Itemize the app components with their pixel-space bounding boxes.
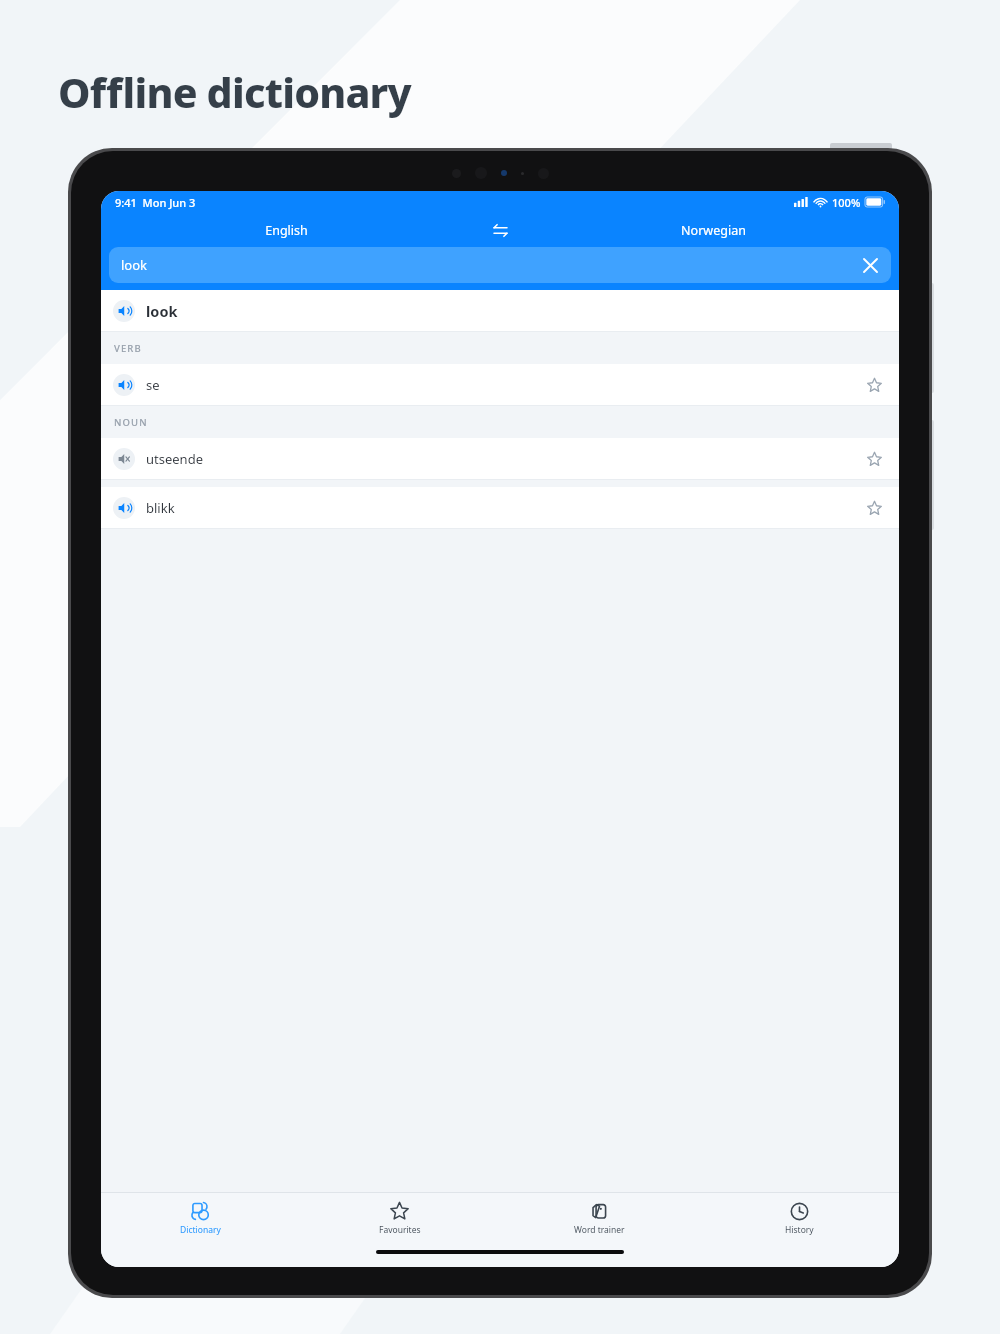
staticText: History <box>785 1224 814 1236</box>
button[interactable]: Pronounce look <box>101 290 899 331</box>
button[interactable]: Favourites <box>300 1193 499 1245</box>
staticText: Offline dictionary <box>58 64 411 120</box>
staticText: se <box>146 376 160 394</box>
button[interactable]: Dictionary <box>101 1193 300 1245</box>
button[interactable]: Norwegian <box>528 213 899 247</box>
button[interactable]: Pronounce se <box>101 364 899 405</box>
staticText: look <box>121 256 148 274</box>
staticText: 100% <box>832 195 861 210</box>
staticText: utseende <box>146 450 203 468</box>
button[interactable]: look <box>109 247 891 283</box>
button[interactable]: Pronounce utseende <box>113 448 135 470</box>
button[interactable]: Add blikk to favourites <box>861 495 887 521</box>
button[interactable]: Pronounce look <box>113 300 135 322</box>
button[interactable]: History <box>699 1193 899 1245</box>
staticText: NOUN <box>114 416 148 429</box>
button[interactable]: Clear search <box>857 252 883 278</box>
button[interactable]: English <box>101 213 472 247</box>
button[interactable]: Pronounce blikk <box>113 497 135 519</box>
button[interactable]: Add se to favourites <box>861 372 887 398</box>
staticText: Favourites <box>379 1224 421 1236</box>
button[interactable]: Pronounce se <box>113 374 135 396</box>
staticText: Norwegian <box>681 222 746 239</box>
staticText: 9:41 Mon Jun 3 <box>115 195 196 210</box>
staticText: English <box>265 222 308 239</box>
button[interactable]: Swap languages <box>472 213 528 247</box>
button[interactable]: Word trainer <box>499 1193 699 1245</box>
staticText: blikk <box>146 499 175 517</box>
button[interactable]: Pronounce blikk <box>101 487 899 528</box>
staticText: look <box>146 301 178 321</box>
staticText: VERB <box>114 342 142 355</box>
button[interactable]: Add utseende to favourites <box>861 446 887 472</box>
staticText: Dictionary <box>180 1224 221 1236</box>
button[interactable]: Pronounce utseende <box>101 438 899 479</box>
staticText: Word trainer <box>574 1224 625 1236</box>
